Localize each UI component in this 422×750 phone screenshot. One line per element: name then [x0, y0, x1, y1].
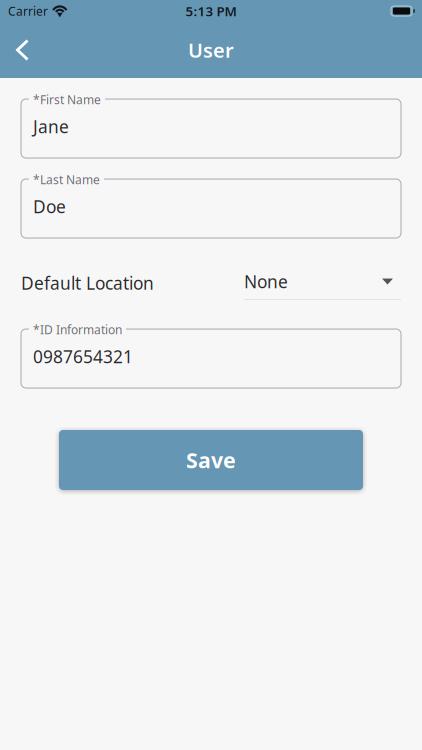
button[interactable]: Save [59, 430, 363, 490]
staticText: Doe [33, 195, 66, 218]
staticText: Carrier [8, 3, 48, 19]
staticText: *Last Name [33, 171, 100, 187]
button[interactable]: Back [0, 22, 46, 78]
button[interactable]: None [244, 266, 401, 300]
staticText: 0987654321 [33, 345, 133, 368]
staticText: None [244, 270, 288, 293]
staticText: 5:13 PM [185, 2, 236, 20]
staticText: User [188, 37, 234, 63]
staticText: Jane [33, 115, 69, 138]
staticText: Default Location [21, 271, 154, 294]
staticText: Save [186, 446, 236, 474]
staticText: *ID Information [33, 321, 122, 337]
staticText: *First Name [33, 91, 101, 107]
